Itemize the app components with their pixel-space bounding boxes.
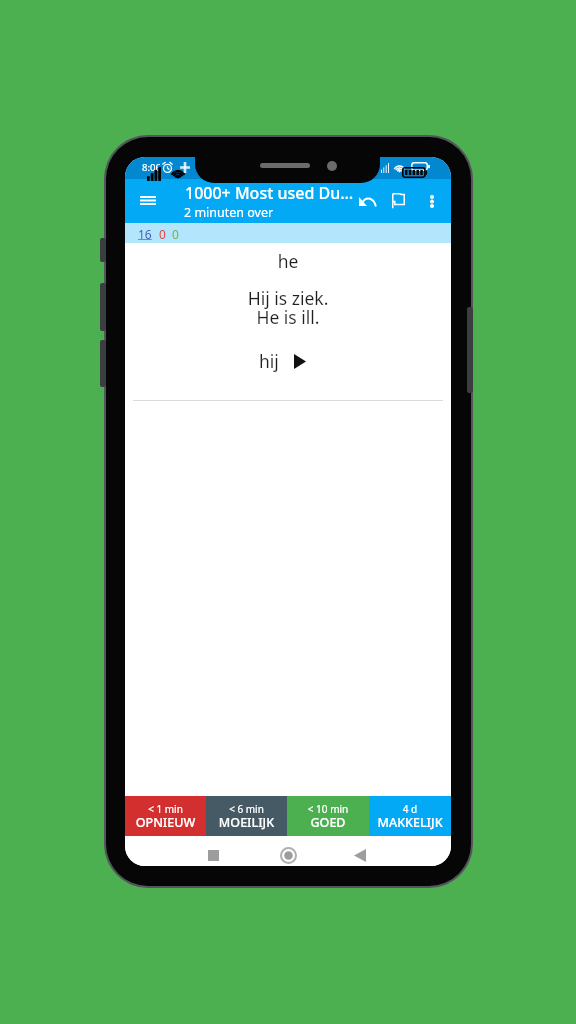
button[interactable]: 4 d bbox=[369, 796, 451, 836]
staticText: < 6 min bbox=[206, 802, 287, 816]
staticText: MAKKELIJK bbox=[369, 814, 451, 831]
button[interactable]: < 1 min bbox=[125, 796, 206, 836]
button[interactable]: Open navigation drawer bbox=[132, 187, 164, 214]
staticText: 16 bbox=[138, 226, 152, 242]
staticText: < 1 min bbox=[125, 802, 206, 816]
staticText: 2 minuten over bbox=[184, 204, 274, 221]
staticText: he bbox=[125, 249, 451, 273]
staticText: hij bbox=[259, 349, 279, 373]
staticText: OPNIEUW bbox=[125, 814, 206, 831]
button[interactable]: Undo bbox=[351, 189, 383, 213]
staticText: Hij is ziek. He is ill. bbox=[125, 286, 451, 329]
button[interactable]: Back bbox=[344, 842, 376, 866]
staticText: 4 d bbox=[369, 802, 451, 816]
button[interactable]: Recent apps bbox=[197, 842, 229, 866]
button[interactable]: < 6 min bbox=[206, 796, 287, 836]
button[interactable]: < 10 min bbox=[287, 796, 369, 836]
button[interactable]: Home bbox=[272, 842, 304, 866]
staticText: GOED bbox=[287, 814, 369, 831]
button[interactable]: More options bbox=[416, 186, 448, 216]
button[interactable]: Flag card bbox=[382, 186, 414, 216]
staticText: 8:06 bbox=[142, 161, 161, 174]
staticText: 1000+ Most used Du… bbox=[185, 182, 354, 204]
staticText: 0 bbox=[172, 226, 179, 242]
staticText: < 10 min bbox=[287, 802, 369, 816]
staticText: MOEILIJK bbox=[206, 814, 287, 831]
staticText: 0 bbox=[159, 226, 166, 242]
